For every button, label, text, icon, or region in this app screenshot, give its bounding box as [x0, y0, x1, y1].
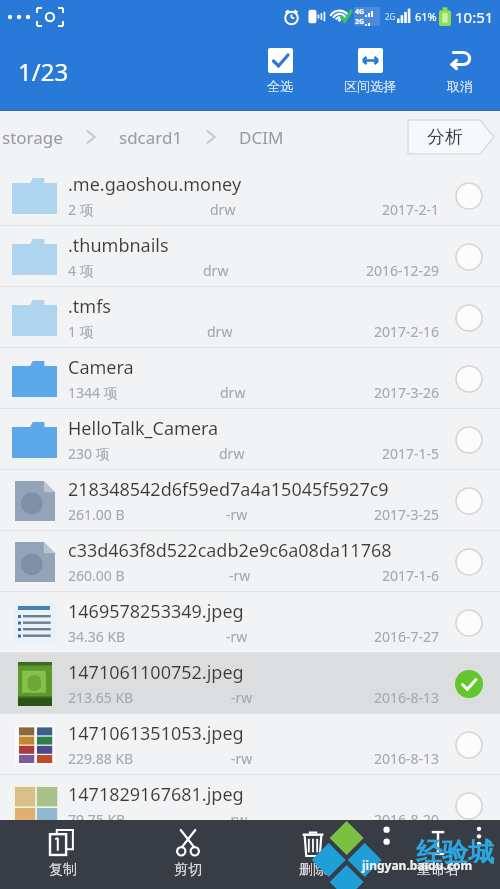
button[interactable]: 全选 — [244, 44, 316, 98]
staticText: .thumbnails — [68, 233, 169, 258]
staticText: 1471061100752.jpeg — [68, 660, 244, 685]
button[interactable]: c33d463f8d522cadb2e9c6a08da11768 — [0, 531, 500, 592]
staticText: 1/23 — [18, 55, 69, 88]
button[interactable]: 删除 — [250, 820, 375, 889]
staticText: 229.88 KB — [68, 749, 134, 768]
button[interactable]: 选择 — [446, 539, 492, 585]
staticText: drw — [220, 383, 246, 402]
staticText: 1344 项 — [68, 383, 118, 402]
button[interactable]: 分析 — [408, 120, 494, 154]
staticText: 2017-1-6 — [382, 566, 440, 585]
staticText: jingyan.baidu.com — [362, 857, 473, 873]
button[interactable]: .tmfs — [0, 287, 500, 348]
button[interactable]: 1471061351053.jpeg — [0, 714, 500, 775]
button[interactable]: 1469578253349.jpeg — [0, 592, 500, 653]
staticText: .me.gaoshou.money — [68, 172, 242, 197]
staticText: .tmfs — [68, 294, 111, 319]
staticText: 2017-2-16 — [374, 322, 440, 341]
staticText: 2G — [355, 17, 365, 26]
button[interactable]: 218348542d6f59ed7a4a15045f5927c9 — [0, 470, 500, 531]
staticText: 230 项 — [68, 444, 110, 463]
button[interactable]: 更多 — [468, 824, 490, 846]
staticText: drw — [207, 322, 233, 341]
button[interactable]: 选择 — [446, 661, 492, 707]
button[interactable]: 选择 — [446, 478, 492, 524]
button[interactable]: 重命名 — [375, 820, 500, 889]
button[interactable]: 1471061100752.jpeg — [0, 653, 500, 714]
staticText: 复制 — [49, 861, 77, 879]
button[interactable]: 复制 — [0, 820, 125, 889]
staticText: HelloTalk_Camera — [68, 416, 219, 441]
button[interactable]: 选择 — [446, 173, 492, 219]
staticText: 218348542d6f59ed7a4a15045f5927c9 — [68, 477, 389, 502]
staticText: 2016-8-13 — [374, 749, 440, 768]
button[interactable]: 选择 — [446, 783, 492, 829]
button[interactable]: sdcard1 — [119, 126, 183, 149]
staticText: 分析 — [427, 126, 463, 149]
staticText: -rw — [231, 688, 253, 707]
staticText: 2016-8-13 — [374, 688, 440, 707]
staticText: 删除 — [299, 861, 327, 879]
staticText: 1471829167681.jpeg — [68, 782, 244, 807]
button[interactable]: 选择 — [446, 295, 492, 341]
staticText: 1 项 — [68, 322, 94, 341]
staticText: drw — [210, 200, 236, 219]
button[interactable]: DCIM — [239, 126, 284, 149]
staticText: c33d463f8d522cadb2e9c6a08da11768 — [68, 538, 392, 563]
staticText: 10:51 — [455, 7, 494, 27]
staticText: 260.00 B — [68, 566, 125, 585]
button[interactable]: HelloTalk_Camera — [0, 409, 500, 470]
button[interactable]: storage — [0, 126, 63, 149]
staticText: 2016-12-29 — [366, 261, 440, 280]
other: 取消 — [448, 48, 473, 73]
staticText: 34.36 KB — [68, 627, 126, 646]
staticText: 经验城 — [416, 836, 494, 869]
staticText: drw — [203, 261, 229, 280]
staticText: -rw — [229, 566, 251, 585]
staticText: 重命名 — [417, 861, 459, 879]
staticText: 2017-1-5 — [382, 444, 440, 463]
button[interactable]: 区间选择 — [334, 44, 406, 98]
button[interactable]: .me.gaoshou.money — [0, 165, 500, 226]
staticText: 2016-7-27 — [374, 627, 440, 646]
staticText: -rw — [226, 505, 248, 524]
staticText: 61% — [415, 9, 437, 24]
button[interactable]: .thumbnails — [0, 226, 500, 287]
staticText: -rw — [226, 627, 248, 646]
staticText: -rw — [231, 749, 253, 768]
staticText: 261.00 B — [68, 505, 125, 524]
staticText: 79.75 KB — [68, 810, 126, 829]
staticText: 4G — [355, 7, 365, 17]
button[interactable]: 选择 — [446, 356, 492, 402]
button[interactable]: 选择 — [446, 417, 492, 463]
button[interactable]: 选择 — [446, 600, 492, 646]
button[interactable]: Camera — [0, 348, 500, 409]
staticText: 1471061351053.jpeg — [68, 721, 244, 746]
staticText: 1469578253349.jpeg — [68, 599, 244, 624]
staticText: 4 项 — [68, 261, 94, 280]
button[interactable]: 剪切 — [125, 820, 250, 889]
staticText: Camera — [68, 355, 134, 380]
staticText: 2017-2-1 — [382, 200, 440, 219]
staticText: 213.65 KB — [68, 688, 134, 707]
button[interactable]: 1471829167681.jpeg — [0, 775, 500, 836]
staticText: -rw — [226, 810, 248, 829]
button[interactable]: 选择 — [446, 234, 492, 280]
staticText: 区间选择 — [344, 78, 396, 94]
staticText: 2 项 — [68, 200, 94, 219]
button[interactable]: 选择 — [446, 722, 492, 768]
button[interactable]: 取消 — [424, 44, 496, 98]
staticText: 全选 — [267, 78, 293, 94]
staticText: 2016-8-20 — [374, 810, 440, 829]
staticText: 2G — [385, 11, 396, 22]
staticText: 2017-3-25 — [374, 505, 440, 524]
staticText: drw — [219, 444, 245, 463]
staticText: 取消 — [447, 78, 473, 94]
staticText: 2017-3-26 — [374, 383, 440, 402]
staticText: 剪切 — [174, 861, 202, 879]
